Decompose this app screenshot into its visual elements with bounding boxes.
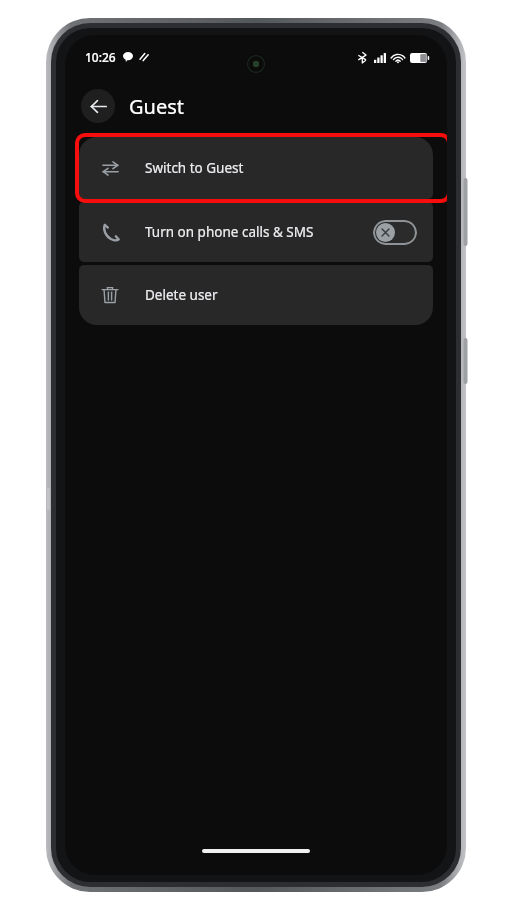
button[interactable]: Delete user [79,265,433,325]
button[interactable]: Back [81,89,115,123]
staticText: Guest [129,93,184,120]
staticText: Delete user [145,286,218,304]
button[interactable]: Switch to Guest [79,137,433,199]
staticText: Switch to Guest [145,159,244,177]
button[interactable]: Turn on phone calls and SMS [373,220,417,245]
button[interactable]: Turn on phone calls & SMS [79,202,433,262]
staticText: Turn on phone calls & SMS [145,223,373,241]
staticText: 10:26 [85,49,116,65]
